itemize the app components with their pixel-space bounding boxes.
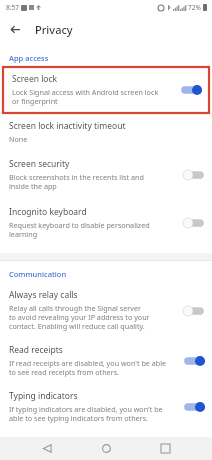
staticText: 72% xyxy=(188,3,201,12)
staticText: Communication xyxy=(9,269,67,279)
button[interactable]: Back xyxy=(5,19,25,39)
button[interactable]: Toggle on xyxy=(182,354,206,368)
staticText: Always relay calls xyxy=(9,289,78,301)
staticText: Lock Signal access with Android screen l… xyxy=(12,87,159,107)
staticText: 8:57 xyxy=(6,3,19,12)
button[interactable]: Toggle off xyxy=(182,304,206,318)
staticText: Screen lock xyxy=(12,73,58,85)
staticText: Incognito keyboard xyxy=(9,206,87,218)
staticText: Typing indicators xyxy=(9,390,78,402)
staticText: Privacy xyxy=(35,22,73,37)
button[interactable]: Incognito keyboard xyxy=(0,199,212,247)
staticText: Screen security xyxy=(9,158,70,170)
staticText: Request keyboard to disable personalized… xyxy=(9,220,150,240)
staticText: If read receipts are disabled, you won't… xyxy=(9,358,167,378)
button[interactable]: Read receipts xyxy=(0,338,212,384)
button[interactable]: Home xyxy=(94,437,118,460)
staticText: None xyxy=(9,134,28,144)
button[interactable]: Typing indicators xyxy=(0,384,212,430)
button[interactable]: Back xyxy=(35,437,59,460)
button[interactable]: Recents xyxy=(153,437,177,460)
button[interactable]: Screen lock inactivity timeout xyxy=(0,113,212,151)
staticText: App access xyxy=(9,53,49,63)
button[interactable]: Screen lock xyxy=(3,67,209,113)
staticText: Screen lock inactivity timeout xyxy=(9,120,126,132)
button[interactable]: Toggle off xyxy=(182,168,206,182)
staticText: Relay all calls through the Signal serve… xyxy=(9,303,150,332)
button[interactable]: Toggle on xyxy=(182,400,206,414)
button[interactable]: Screen security xyxy=(0,151,212,199)
staticText: Read receipts xyxy=(9,344,63,356)
staticText: Block screenshots in the recents list an… xyxy=(9,172,144,192)
staticText: If typing indicators are disabled, you w… xyxy=(9,404,163,424)
button[interactable]: Toggle on xyxy=(179,83,203,97)
button[interactable]: Always relay calls xyxy=(0,283,212,338)
button[interactable]: Toggle off xyxy=(182,216,206,230)
